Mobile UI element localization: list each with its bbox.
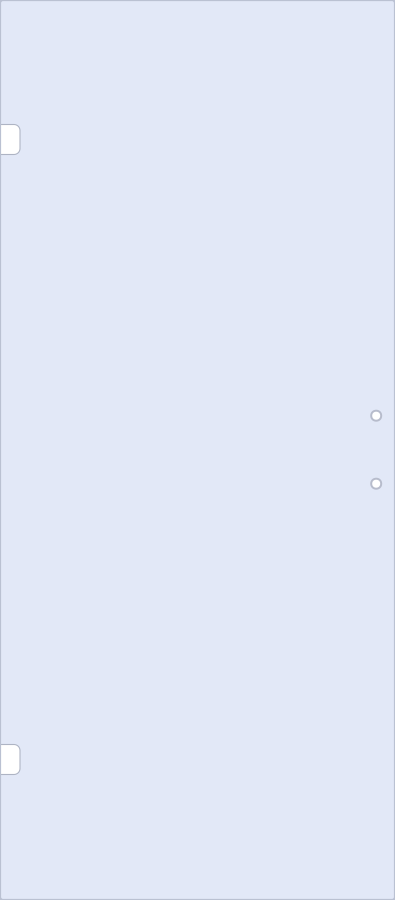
- button[interactable]: Back: [0, 124, 20, 154]
- button[interactable]: Select: [371, 479, 381, 489]
- button[interactable]: Home: [0, 744, 20, 774]
- button[interactable]: Select: [371, 411, 381, 421]
